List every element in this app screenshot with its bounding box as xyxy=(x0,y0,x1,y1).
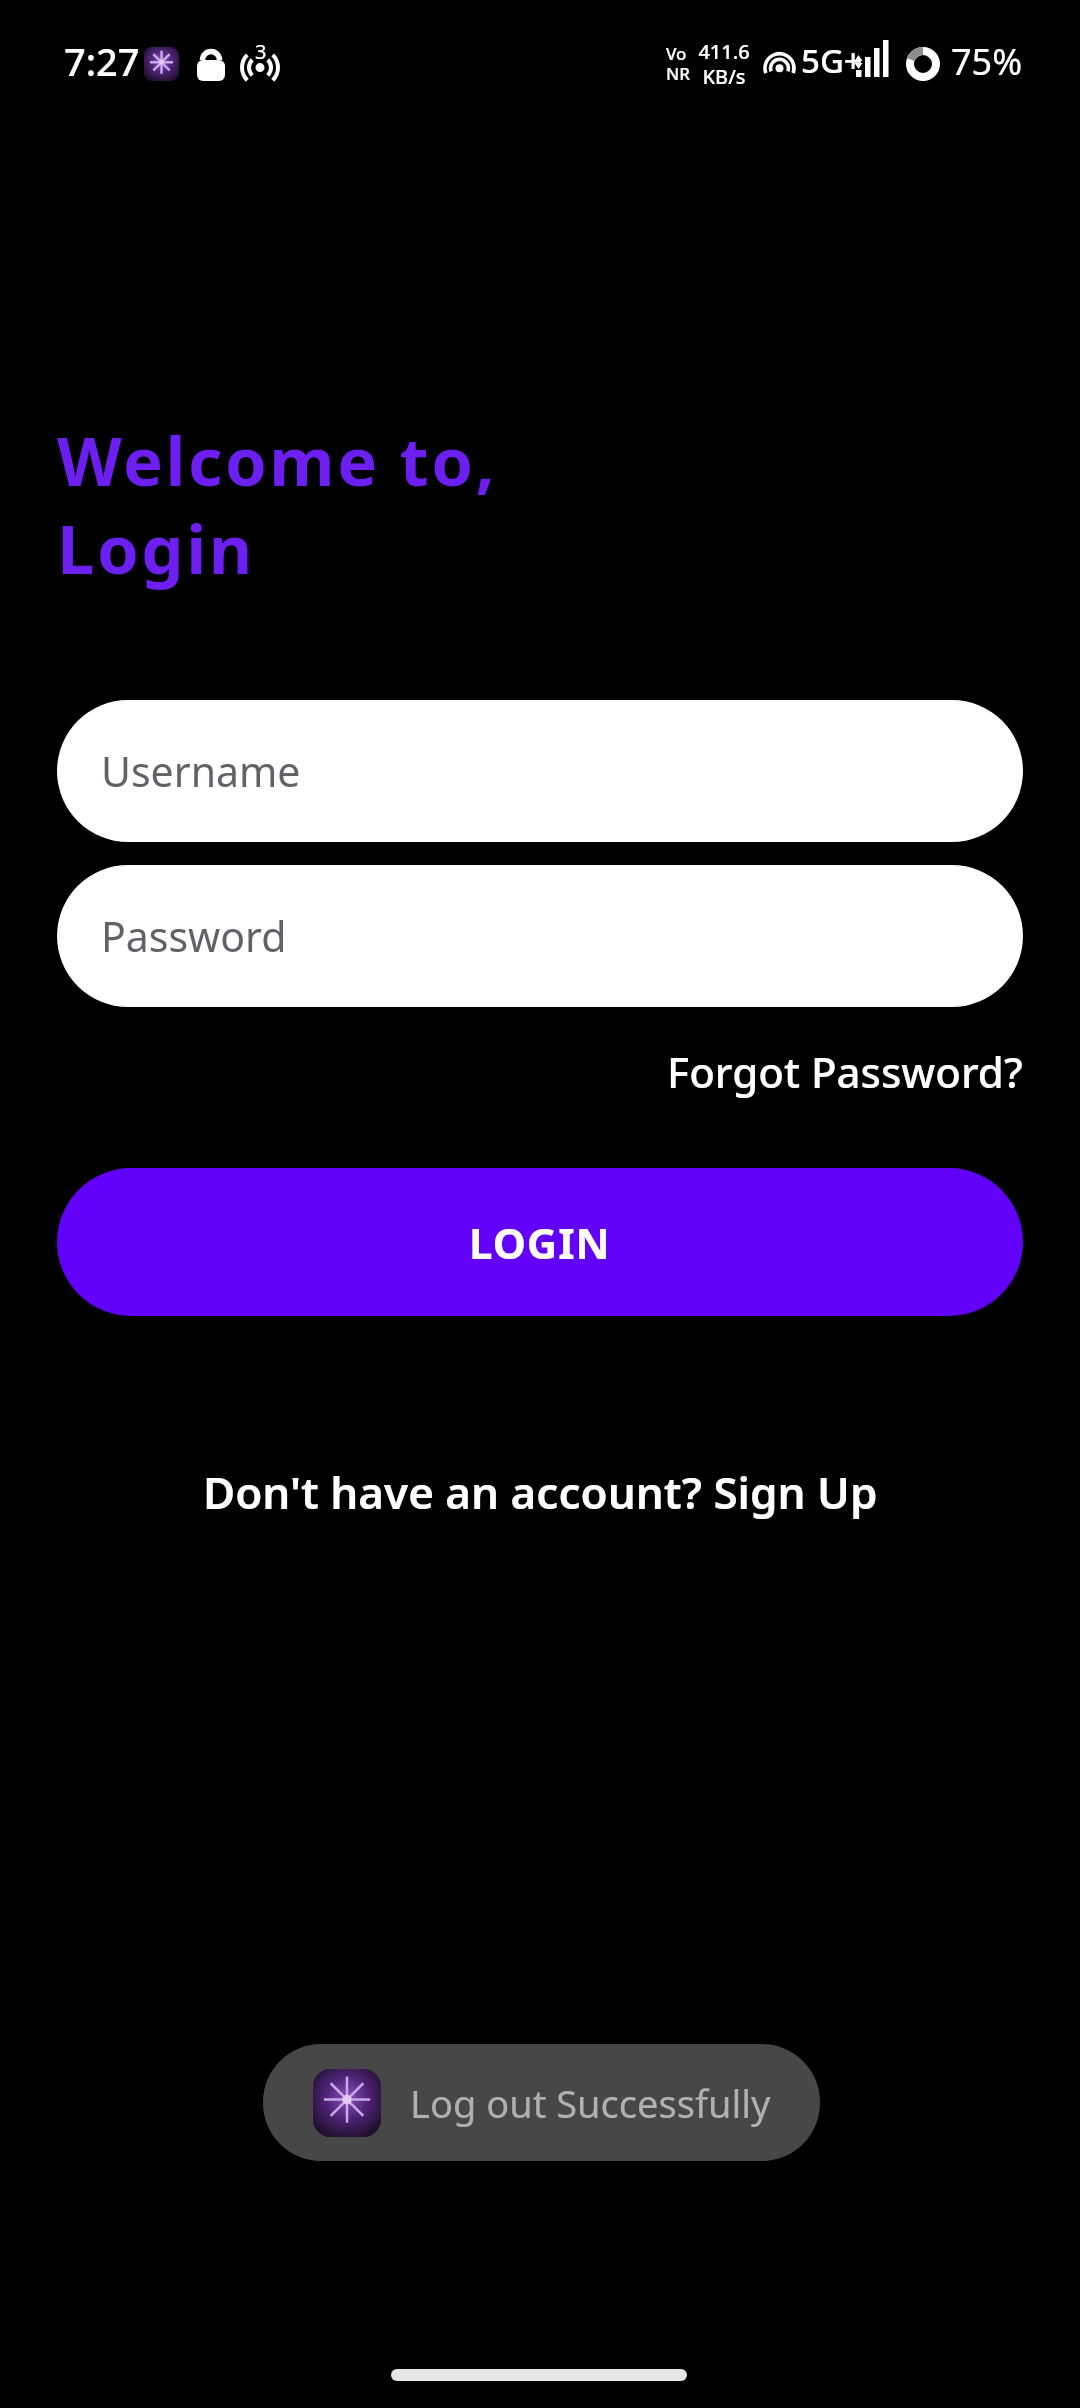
staticText: Welcome to, xyxy=(57,414,498,505)
button[interactable]: Don't have an account? Sign Up xyxy=(203,1462,878,1522)
button[interactable]: LOGIN xyxy=(57,1168,1023,1316)
button[interactable]: Password xyxy=(57,865,1023,1007)
staticText: Username xyxy=(101,743,301,799)
staticText: Vo NR xyxy=(666,42,690,85)
staticText: Log out Successfully xyxy=(410,2077,771,2129)
staticText: 75% xyxy=(951,37,1023,86)
button[interactable]: Forgot Password? xyxy=(667,1043,1023,1100)
staticText: 411.6 KB/s xyxy=(698,38,750,90)
staticText: Password xyxy=(101,908,287,964)
staticText: 5G+ xyxy=(801,38,863,83)
staticText: LOGIN xyxy=(469,1214,611,1271)
staticText: Login xyxy=(57,502,255,593)
staticText: 3 xyxy=(255,38,267,65)
staticText: 7:27 xyxy=(64,35,140,87)
button[interactable]: Username xyxy=(57,700,1023,842)
